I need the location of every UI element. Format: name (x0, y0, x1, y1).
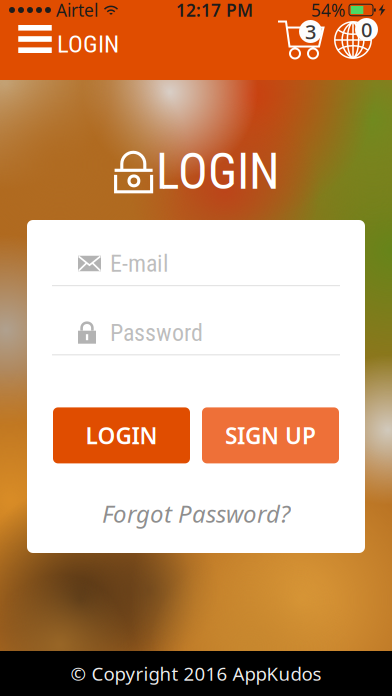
staticText: 0 (361, 16, 372, 43)
staticText: Airtel (56, 0, 98, 21)
staticText: LOGIN (156, 143, 280, 201)
staticText: SIGN UP (225, 420, 316, 450)
button[interactable]: LOGIN (53, 407, 190, 463)
staticText: LOGIN (57, 29, 119, 58)
button[interactable]: Cart (277, 19, 328, 58)
staticText: E-mail (110, 249, 169, 277)
staticText: © Copyright 2016 AppKudos (70, 661, 321, 686)
button[interactable]: Language (334, 21, 372, 59)
staticText: 54% (311, 0, 345, 21)
button[interactable]: SIGN UP (202, 407, 339, 463)
staticText: Forgot Password? (102, 497, 290, 529)
staticText: Password (110, 319, 203, 347)
staticText: LOGIN (85, 420, 157, 450)
button[interactable]: Menu (18, 25, 52, 53)
button[interactable]: Forgot Password? (102, 497, 290, 529)
staticText: 12:17 PM (176, 0, 253, 21)
staticText: 3 (305, 18, 316, 45)
